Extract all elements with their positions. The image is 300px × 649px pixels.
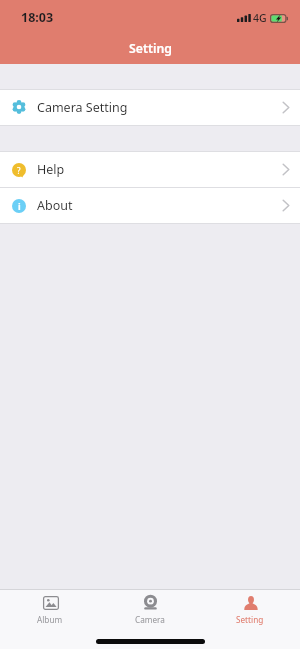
button[interactable]: ? (0, 152, 300, 187)
button[interactable]: Camera (100, 590, 200, 630)
staticText: Help (37, 161, 65, 178)
button[interactable]: Setting (200, 590, 300, 630)
staticText: 18:03 (21, 9, 54, 26)
staticText: About (37, 197, 73, 214)
staticText: 4G (253, 11, 267, 25)
staticText: ? (17, 165, 21, 176)
staticText: Setting (236, 614, 264, 625)
staticText: Camera (135, 614, 165, 625)
staticText: i (18, 200, 21, 212)
staticText: Setting (129, 40, 172, 57)
button[interactable]: Camera Setting (0, 90, 300, 125)
button[interactable]: i (0, 188, 300, 223)
staticText: Camera Setting (37, 99, 128, 116)
button[interactable]: Album (0, 590, 100, 630)
staticText: Album (37, 614, 63, 625)
